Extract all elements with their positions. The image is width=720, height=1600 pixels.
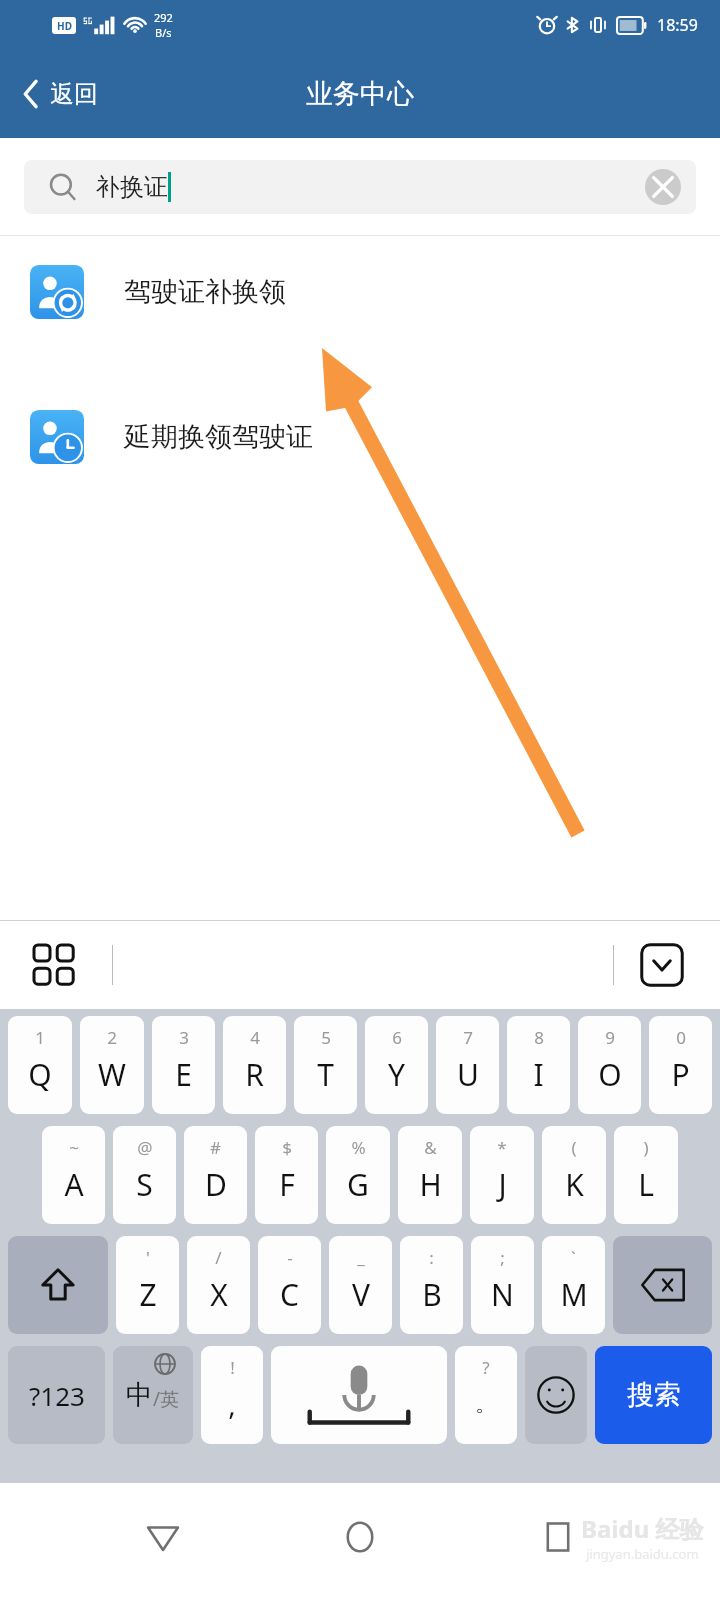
button[interactable]: @ <box>113 1126 176 1224</box>
staticText: N <box>491 1274 514 1315</box>
button[interactable]: ' <box>116 1236 179 1334</box>
staticText: T <box>317 1054 334 1095</box>
staticText: M <box>560 1274 588 1315</box>
button[interactable]: 返回 <box>128 1502 198 1572</box>
button[interactable]: - <box>258 1236 321 1334</box>
button[interactable]: ` <box>542 1236 605 1334</box>
staticText: S <box>136 1164 153 1205</box>
staticText: 返回 <box>50 79 98 109</box>
button[interactable]: ; <box>471 1236 534 1334</box>
button[interactable]: ~ <box>42 1126 105 1224</box>
staticText: 1 <box>35 1026 45 1049</box>
button[interactable]: 主页 <box>325 1502 395 1572</box>
staticText: G <box>347 1164 369 1205</box>
staticText: ) <box>643 1136 649 1159</box>
staticText: & <box>424 1136 437 1159</box>
button[interactable]: / <box>187 1236 250 1334</box>
button[interactable]: 0 <box>649 1016 712 1114</box>
staticText: 7 <box>463 1026 473 1049</box>
button[interactable]: 3 <box>152 1016 215 1114</box>
staticText: ; <box>500 1246 505 1269</box>
button[interactable]: $ <box>255 1126 318 1224</box>
staticText: U <box>457 1054 479 1095</box>
button[interactable]: 清除 <box>642 166 684 208</box>
button[interactable]: 搜索 <box>595 1346 712 1444</box>
staticText: ` <box>571 1246 576 1269</box>
button[interactable]: 最近任务 <box>523 1502 593 1572</box>
button[interactable]: : <box>400 1236 463 1334</box>
staticText: # <box>210 1136 221 1159</box>
button[interactable]: 9 <box>578 1016 641 1114</box>
button[interactable]: 中 <box>113 1346 193 1444</box>
staticText: A <box>64 1164 84 1205</box>
staticText: C <box>280 1274 299 1315</box>
staticText: 。 <box>475 1390 497 1418</box>
staticText: H <box>419 1164 442 1205</box>
staticText: W <box>98 1054 126 1095</box>
staticText: 驾驶证补换领 <box>124 275 286 309</box>
staticText: @ <box>137 1136 153 1159</box>
staticText: $ <box>282 1136 292 1159</box>
staticText: J <box>498 1164 507 1205</box>
button[interactable]: ? <box>455 1346 517 1444</box>
button[interactable]: 2 <box>80 1016 144 1114</box>
button[interactable]: 返回 <box>14 73 106 115</box>
staticText: , <box>228 1385 236 1423</box>
button[interactable]: 5 <box>294 1016 357 1114</box>
staticText: B/s <box>155 25 172 40</box>
staticText: 0 <box>676 1026 686 1049</box>
staticText: : <box>429 1246 434 1269</box>
button[interactable]: 空格 <box>271 1346 447 1444</box>
button[interactable]: 7 <box>436 1016 499 1114</box>
button[interactable]: 延期换领驾驶证 <box>0 406 720 468</box>
staticText: 业务中心 <box>306 77 414 111</box>
staticText: * <box>497 1136 507 1159</box>
button[interactable]: 表情 <box>525 1346 587 1444</box>
button[interactable]: ) <box>614 1126 678 1224</box>
staticText: jingyan.baidu.com <box>586 1545 699 1563</box>
staticText: R <box>245 1054 264 1095</box>
staticText: 9 <box>605 1026 615 1049</box>
staticText: 中 <box>126 1378 153 1412</box>
button[interactable]: 收起键盘 <box>636 939 688 991</box>
staticText: E <box>175 1054 192 1095</box>
staticText: Y <box>388 1054 405 1095</box>
staticText: X <box>210 1274 228 1315</box>
button[interactable]: 键盘布局 <box>26 937 82 993</box>
button[interactable]: 补换证 <box>24 160 696 214</box>
staticText: D <box>205 1164 227 1205</box>
staticText: F <box>279 1164 295 1205</box>
staticText: 6 <box>392 1026 402 1049</box>
button[interactable]: 6 <box>365 1016 428 1114</box>
staticText: 4 <box>250 1026 260 1049</box>
button[interactable]: _ <box>329 1236 392 1334</box>
staticText: ' <box>146 1246 150 1269</box>
button[interactable]: ?123 <box>8 1346 105 1444</box>
button[interactable]: & <box>398 1126 462 1224</box>
staticText: 延期换领驾驶证 <box>124 420 313 454</box>
staticText: / <box>215 1246 222 1269</box>
button[interactable]: 驾驶证补换领 <box>0 261 720 323</box>
button[interactable]: 1 <box>8 1016 72 1114</box>
button[interactable]: % <box>326 1126 390 1224</box>
staticText: _ <box>357 1246 365 1269</box>
staticText: B <box>422 1274 442 1315</box>
staticText: ?123 <box>29 1378 85 1413</box>
button[interactable]: ! <box>201 1346 263 1444</box>
button[interactable]: * <box>470 1126 534 1224</box>
staticText: - <box>287 1246 293 1269</box>
button[interactable]: ( <box>542 1126 606 1224</box>
button[interactable]: 8 <box>507 1016 570 1114</box>
staticText: 5 <box>321 1026 331 1049</box>
staticText: V <box>352 1274 370 1315</box>
staticText: Baidu 经验 <box>581 1512 704 1545</box>
staticText: ? <box>482 1356 490 1379</box>
button[interactable]: Shift <box>8 1236 108 1334</box>
button[interactable]: 删除 <box>613 1236 712 1334</box>
button[interactable]: # <box>184 1126 247 1224</box>
staticText: 2 <box>107 1026 117 1049</box>
staticText: % <box>351 1136 366 1159</box>
staticText: Z <box>139 1274 157 1315</box>
button[interactable]: 4 <box>223 1016 286 1114</box>
staticText: 8 <box>534 1026 544 1049</box>
